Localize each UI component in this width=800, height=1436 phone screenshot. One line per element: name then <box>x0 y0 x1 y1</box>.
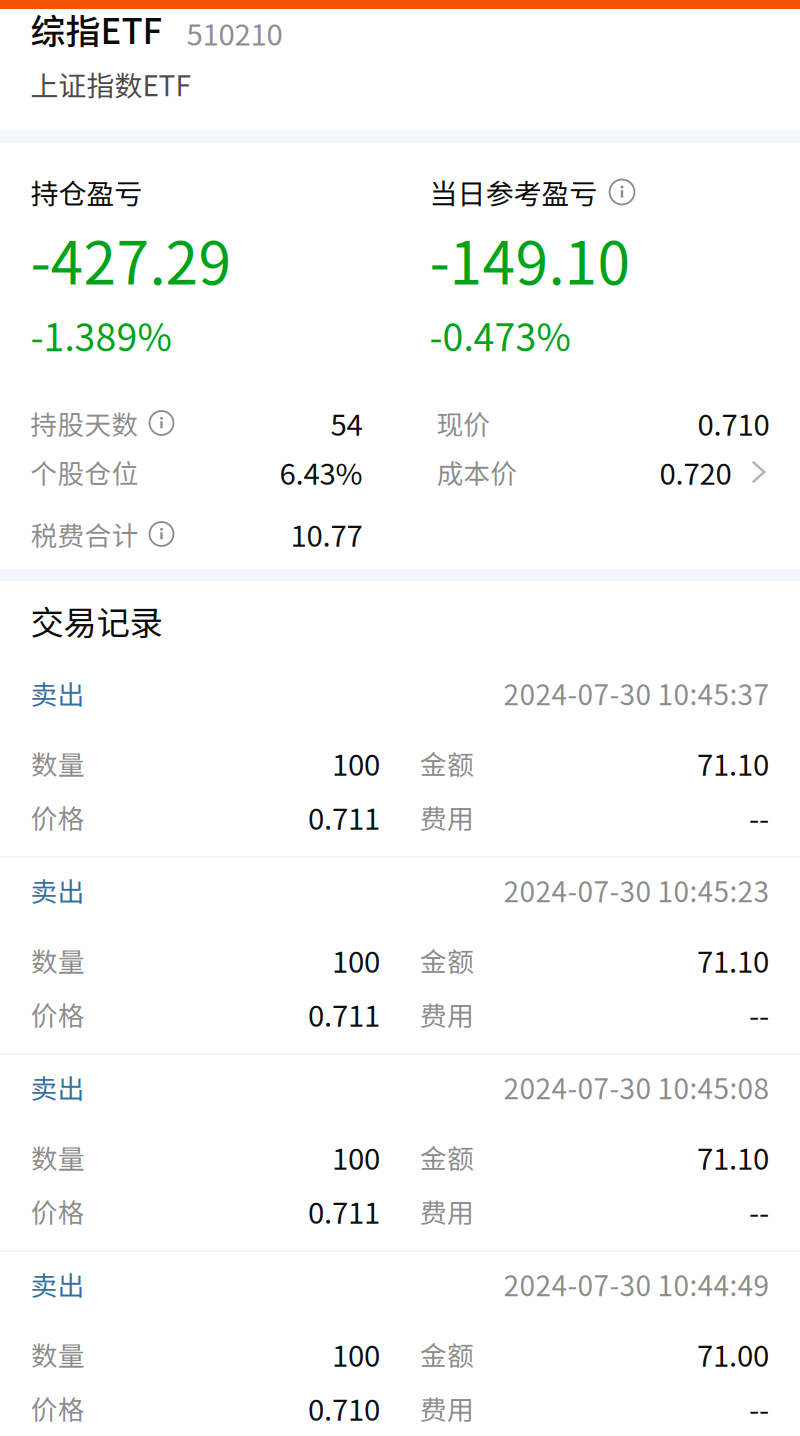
staticText: 0.711 <box>308 993 380 1035</box>
staticText: -- <box>749 1190 769 1232</box>
staticText: 费用 <box>420 995 474 1033</box>
staticText: -149.10 <box>429 216 630 301</box>
staticText: 价格 <box>31 1389 85 1427</box>
button[interactable]: 现价 <box>436 408 769 438</box>
staticText: 71.00 <box>697 1333 769 1375</box>
staticText: 71.10 <box>697 1136 769 1178</box>
button[interactable]: 卖出 <box>0 858 800 1053</box>
staticText: 100 <box>332 1333 380 1375</box>
staticText: -- <box>749 1387 769 1429</box>
staticText: 71.10 <box>697 939 769 981</box>
staticText: 金额 <box>420 1138 474 1176</box>
staticText: 数量 <box>31 1138 85 1176</box>
staticText: 卖出 <box>30 871 84 909</box>
staticText: 上证指数ETF <box>30 64 190 104</box>
staticText: 0.720 <box>659 451 731 493</box>
button[interactable]: 卖出 <box>0 661 800 856</box>
button[interactable]: 综指ETF <box>30 9 769 54</box>
staticText: 费用 <box>420 798 474 836</box>
staticText: 0.710 <box>308 1387 380 1429</box>
staticText: 现价 <box>436 404 490 442</box>
staticText: 综指ETF <box>30 4 162 54</box>
staticText: 当日参考盈亏 <box>429 172 597 212</box>
staticText: -- <box>749 993 769 1035</box>
staticText: 卖出 <box>30 1068 84 1106</box>
staticText: 2024-07-30 10:45:23 <box>503 870 769 910</box>
button[interactable]: 持股天数 <box>30 408 362 438</box>
staticText: 0.710 <box>697 402 769 444</box>
staticText: 价格 <box>31 1192 85 1230</box>
staticText: 金额 <box>420 1335 474 1373</box>
staticText: 持仓盈亏 <box>30 172 142 212</box>
staticText: 2024-07-30 10:45:08 <box>503 1067 769 1107</box>
staticText: 54 <box>330 402 362 444</box>
staticText: 成本价 <box>436 453 517 491</box>
staticText: 2024-07-30 10:45:37 <box>503 673 769 713</box>
staticText: 金额 <box>420 941 474 979</box>
staticText: -0.473% <box>429 308 570 362</box>
staticText: 6.43% <box>279 451 362 493</box>
staticText: 数量 <box>31 744 85 782</box>
staticText: 0.711 <box>308 796 380 838</box>
staticText: 卖出 <box>30 674 84 712</box>
staticText: 金额 <box>420 744 474 782</box>
staticText: 交易记录 <box>30 596 162 645</box>
staticText: 数量 <box>31 941 85 979</box>
staticText: 100 <box>332 742 380 784</box>
staticText: 税费合计 <box>30 515 138 553</box>
staticText: 价格 <box>31 995 85 1033</box>
button[interactable]: 个股仓位 <box>30 457 362 487</box>
button[interactable]: 卖出 <box>0 1055 800 1250</box>
staticText: 费用 <box>420 1389 474 1427</box>
staticText: 费用 <box>420 1192 474 1230</box>
staticText: 510210 <box>186 11 282 54</box>
staticText: 持股天数 <box>30 404 138 442</box>
staticText: 2024-07-30 10:44:49 <box>503 1264 769 1304</box>
staticText: -- <box>749 796 769 838</box>
button[interactable]: 税费合计 <box>30 519 362 549</box>
staticText: 100 <box>332 939 380 981</box>
staticText: 卖出 <box>30 1265 84 1303</box>
staticText: 100 <box>332 1136 380 1178</box>
staticText: 71.10 <box>697 742 769 784</box>
staticText: -427.29 <box>30 216 231 301</box>
button[interactable]: 卖出 <box>0 1252 800 1436</box>
button[interactable]: 成本价 <box>436 457 769 487</box>
staticText: 个股仓位 <box>30 453 138 491</box>
staticText: 10.77 <box>290 513 362 555</box>
staticText: 0.711 <box>308 1190 380 1232</box>
staticText: -1.389% <box>30 308 171 362</box>
staticText: 数量 <box>31 1335 85 1373</box>
staticText: 价格 <box>31 798 85 836</box>
